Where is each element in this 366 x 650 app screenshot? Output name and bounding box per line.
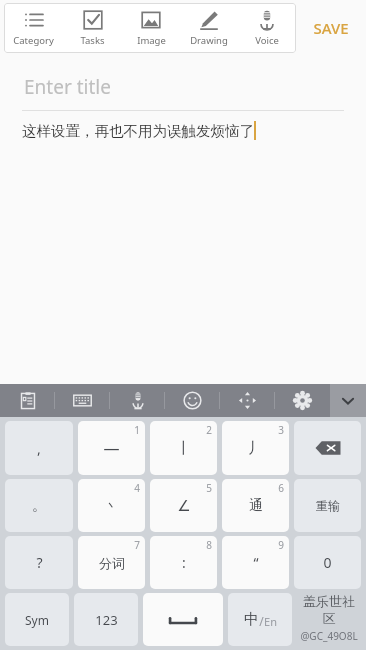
button[interactable]: 123 — [74, 593, 138, 646]
button[interactable]: Keyboard layout — [55, 384, 110, 417]
button[interactable]: 。 — [5, 479, 73, 532]
staticText: 2 — [206, 423, 212, 437]
staticText: , — [37, 439, 41, 458]
button[interactable]: Drawing — [180, 3, 238, 53]
staticText: 中 — [244, 610, 259, 629]
staticText: 9 — [278, 538, 284, 552]
staticText: “ — [253, 553, 259, 572]
staticText: 通 — [249, 497, 263, 515]
button[interactable]: — — [78, 421, 145, 475]
staticText: — — [103, 437, 120, 459]
staticText: Voice — [255, 34, 279, 47]
staticText: : — [182, 553, 186, 572]
button[interactable]: 通 — [222, 479, 289, 532]
button[interactable]: “ — [222, 536, 289, 589]
button[interactable]: 丶 — [78, 479, 145, 532]
staticText: Drawing — [190, 34, 228, 47]
staticText: 7 — [134, 538, 140, 552]
staticText: SAVE — [313, 18, 349, 38]
button[interactable]: 丨 — [150, 421, 217, 475]
button[interactable]: Settings — [275, 384, 330, 417]
staticText: 这样设置，再也不用为误触发烦恼了 — [22, 122, 254, 140]
staticText: ? — [36, 553, 43, 572]
button[interactable]: ∠ — [150, 479, 217, 532]
button[interactable]: Voice input — [110, 384, 165, 417]
button[interactable]: 这样设置，再也不用为误触发烦恼了 — [22, 121, 256, 140]
button[interactable]: Emoji — [165, 384, 220, 417]
staticText: Image — [137, 34, 166, 47]
button[interactable]: Voice — [238, 3, 296, 53]
button[interactable]: Space — [143, 593, 223, 646]
staticText: 1 — [134, 423, 140, 437]
button[interactable]: : — [150, 536, 217, 589]
staticText: 123 — [95, 611, 118, 629]
staticText: ∠ — [177, 497, 191, 514]
button[interactable]: Enter title — [24, 74, 366, 104]
button[interactable]: 0 — [294, 536, 361, 589]
staticText: 8 — [206, 538, 212, 552]
staticText: Category — [13, 34, 54, 47]
button[interactable]: Clipboard — [0, 384, 55, 417]
button[interactable]: 盖乐世社区 — [297, 593, 361, 646]
button[interactable]: ? — [5, 536, 73, 589]
button[interactable]: Hide keyboard — [330, 384, 366, 417]
button[interactable]: SAVE — [300, 3, 362, 53]
staticText: @GC_49O8LDL1 — [297, 629, 361, 646]
button[interactable]: , — [5, 421, 73, 475]
button[interactable]: Sym — [5, 593, 69, 646]
staticText: Sym — [25, 612, 49, 628]
staticText: En — [264, 614, 277, 629]
staticText: 重输 — [316, 498, 340, 513]
staticText: 分词 — [99, 555, 125, 571]
staticText: 丨 — [176, 439, 191, 458]
staticText: Tasks — [80, 34, 105, 47]
staticText: 盖乐世社区 — [297, 593, 361, 627]
button[interactable]: Delete — [294, 421, 361, 475]
button[interactable]: 丿 — [222, 421, 289, 475]
staticText: 3 — [278, 423, 284, 437]
staticText: 0 — [323, 553, 332, 572]
staticText: 5 — [206, 481, 212, 495]
staticText: 丶 — [105, 498, 118, 514]
button[interactable]: Image — [122, 3, 180, 53]
button[interactable]: 分词 — [78, 536, 145, 589]
staticText: 丿 — [248, 439, 263, 458]
staticText: 4 — [134, 481, 140, 495]
button[interactable]: 重输 — [294, 479, 361, 532]
staticText: Enter title — [24, 74, 111, 100]
staticText: 6 — [278, 481, 284, 495]
staticText: 。 — [32, 497, 46, 515]
button[interactable]: Tasks — [63, 3, 122, 53]
staticText: / — [259, 613, 264, 629]
button[interactable]: Category — [4, 3, 63, 53]
button[interactable]: Move cursor — [220, 384, 275, 417]
button[interactable]: Switch language — [228, 593, 292, 646]
